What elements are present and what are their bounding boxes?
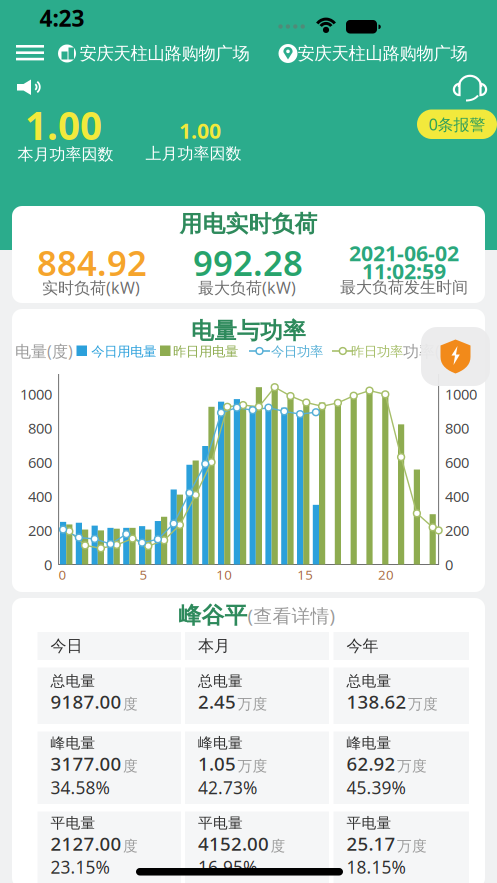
staticText: 1.00 [179,116,221,145]
staticText: 上月功率因数 [145,144,241,163]
staticText: 42.73% [198,776,257,799]
staticText: 1000 [445,384,477,404]
staticText: 平电量 [346,814,391,832]
staticText: 15 [297,566,313,583]
staticText: 600 [445,452,469,472]
staticText: 万度 [397,837,427,855]
staticText: (查看详情) [247,603,335,628]
button[interactable]: 峰谷平 [178,602,335,629]
staticText: 万度 [237,757,267,775]
staticText: 昨日功率 [351,343,403,360]
staticText: 0 [44,555,52,574]
staticText: 今日 [50,636,82,656]
staticText: 200 [28,521,52,540]
staticText: 400 [445,487,469,506]
button[interactable] [0,0,497,883]
staticText: 18.15% [346,855,405,878]
staticText: 1.00 [25,99,102,151]
staticText: 0条报警 [428,114,485,135]
staticText: 峰谷平 [178,602,247,629]
staticText: 安庆天柱山路购物广场 [79,43,249,64]
staticText: 总电量 [50,672,95,690]
staticText: 万度 [408,695,438,713]
staticText: 安庆天柱山路购物广场 [297,43,467,64]
staticText: 200 [445,521,469,540]
staticText: 平电量 [198,814,243,832]
staticText: 本月功率因数 [17,145,113,164]
button[interactable]: 安庆天柱山路购物广场 [0,0,497,883]
button[interactable]: 安庆天柱山路购物广场 [0,0,497,883]
staticText: 今日功率 [271,343,323,360]
button[interactable]: 0条报警 [417,109,497,139]
staticText: 度 [270,837,285,855]
staticText: 992.28 [193,239,303,285]
staticText: 4152.00 [198,831,269,856]
staticText: 400 [28,487,52,506]
staticText: 4:23 [39,3,84,33]
staticText: 度 [123,695,138,713]
staticText: 2021-06-02 [349,239,459,267]
staticText: 20 [378,566,394,583]
staticText: 2127.00 [50,831,121,856]
staticText: 16.95% [198,855,257,878]
staticText: 最大负荷(kW) [198,277,296,298]
staticText: 25.17 [346,831,395,856]
staticText: 23.15% [50,855,109,878]
staticText: 10 [216,566,232,583]
staticText: 今年 [346,636,378,656]
staticText: 62.92 [346,751,395,776]
staticText: 2.45 [198,689,236,714]
staticText: 800 [445,418,469,438]
button[interactable] [421,327,490,386]
staticText: 11:02:59 [362,257,446,285]
staticText: 今日用电量 [91,343,156,360]
staticText: 峰电量 [198,734,243,752]
staticText: 昨日用电量 [173,343,238,360]
staticText: 600 [28,452,52,472]
staticText: 电量与功率 [191,317,306,345]
staticText: 5 [139,566,147,583]
staticText: 平电量 [50,814,95,832]
staticText: 9187.00 [50,689,121,714]
staticText: 峰电量 [50,734,95,752]
staticText: 峰电量 [346,734,391,752]
staticText: 万度 [237,695,267,713]
staticText: 实时负荷(kW) [42,277,140,298]
staticText: 0 [58,566,66,583]
staticText: 总电量 [198,672,243,690]
staticText: 总电量 [346,672,391,690]
staticText: 884.92 [37,239,147,285]
staticText: 138.62 [346,689,406,714]
staticText: 万度 [397,757,427,775]
button[interactable] [0,0,497,883]
staticText: 功率(kW) [403,340,469,362]
staticText: 用电实时负荷 [179,210,317,238]
staticText: 度 [123,757,138,775]
staticText: 本月 [198,636,230,656]
staticText: 电量(度) [15,340,73,362]
staticText: 最大负荷发生时间 [340,278,468,297]
staticText: 1.05 [198,751,236,776]
staticText: 34.58% [50,776,109,799]
staticText: 3177.00 [50,751,121,776]
staticText: 度 [123,837,138,855]
button[interactable] [0,0,497,883]
staticText: 45.39% [346,776,405,799]
staticText: 0 [445,555,453,574]
staticText: 800 [28,418,52,438]
staticText: 1000 [20,384,52,404]
